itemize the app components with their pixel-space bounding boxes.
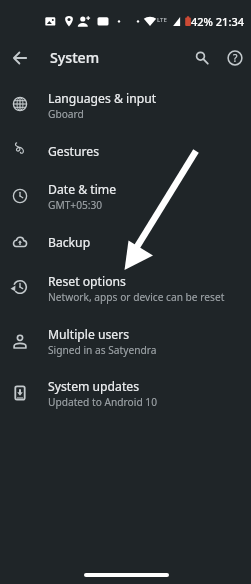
staticText: GMT+05:30	[48, 198, 103, 212]
staticText: Network, apps or device can be reset	[48, 290, 225, 304]
staticText: Gestures	[48, 143, 100, 160]
staticText: Reset options	[48, 273, 126, 290]
staticText: System	[50, 48, 100, 67]
staticText: Languages & input	[48, 90, 157, 107]
staticText: 42% 21:34	[191, 14, 244, 29]
staticText: Multiple users	[48, 326, 130, 343]
button[interactable]: Reset options	[0, 264, 251, 312]
staticText: Date & time	[48, 181, 117, 198]
staticText: Gboard	[48, 107, 84, 121]
button[interactable]: Gestures	[0, 131, 251, 171]
button[interactable]: System updates	[0, 369, 251, 417]
button[interactable]: Multiple users	[0, 317, 251, 365]
button[interactable]: Languages & input	[0, 81, 251, 129]
button[interactable]: Search	[188, 44, 216, 72]
button[interactable]: Back	[6, 44, 34, 72]
button[interactable]: Date & time	[0, 172, 251, 220]
staticText: Backup	[48, 234, 91, 251]
staticText: LTE	[157, 16, 167, 24]
staticText: Signed in as Satyendra	[48, 343, 157, 357]
staticText: System updates	[48, 378, 140, 395]
button[interactable]: Backup	[0, 222, 251, 262]
staticText: Updated to Android 10	[48, 395, 157, 409]
button[interactable]: Help	[221, 44, 249, 72]
staticText: ?	[233, 51, 238, 65]
